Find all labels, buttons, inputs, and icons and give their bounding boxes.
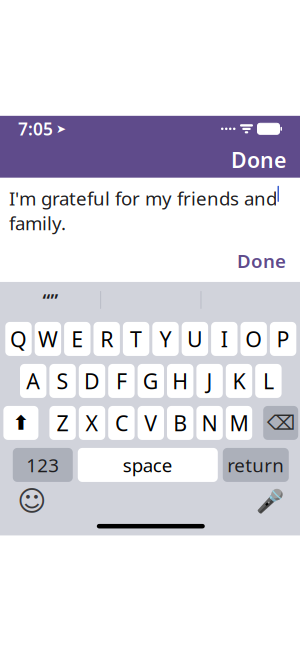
staticText: space <box>123 452 173 477</box>
button[interactable]: I <box>211 322 237 356</box>
staticText: Y <box>159 325 171 353</box>
button[interactable]: Z <box>49 406 76 440</box>
staticText: C <box>115 409 128 437</box>
staticText: “” <box>42 287 58 312</box>
button[interactable]: 123 <box>13 448 73 482</box>
button[interactable]: P <box>270 322 296 356</box>
staticText: R <box>100 325 113 353</box>
staticText: W <box>38 325 58 353</box>
button[interactable]: Dictate <box>253 486 287 516</box>
button[interactable]: Shift <box>3 406 38 440</box>
button[interactable]: W <box>35 322 61 356</box>
button[interactable]: V <box>138 406 164 440</box>
button[interactable]: space <box>78 448 218 482</box>
button[interactable]: K <box>226 364 252 398</box>
button[interactable]: Done <box>217 140 300 180</box>
staticText: P <box>277 325 290 353</box>
staticText: L <box>263 367 274 395</box>
staticText: D <box>84 367 100 395</box>
button[interactable]: F <box>108 364 135 398</box>
button[interactable]: C <box>108 406 135 440</box>
staticText: 123 <box>26 452 59 477</box>
button[interactable]: Delete <box>263 406 298 440</box>
staticText: G <box>143 367 159 395</box>
button[interactable]: G <box>138 364 164 398</box>
staticText: Done <box>237 248 286 273</box>
button[interactable]: L <box>255 364 282 398</box>
button[interactable]: B <box>167 406 193 440</box>
button[interactable]: D <box>79 364 105 398</box>
staticText: ➤ <box>56 122 66 136</box>
staticText: T <box>130 325 142 353</box>
button[interactable]: J <box>196 364 223 398</box>
staticText: E <box>71 325 83 353</box>
staticText: N <box>202 409 218 437</box>
button[interactable]: N <box>196 406 223 440</box>
button[interactable]: T <box>123 322 149 356</box>
staticText: U <box>187 325 203 353</box>
button[interactable]: A <box>20 364 46 398</box>
staticText: Q <box>10 325 27 353</box>
staticText: 7:05 <box>18 117 53 140</box>
staticText: B <box>173 409 187 437</box>
staticText: return <box>227 452 284 477</box>
button[interactable]: E <box>64 322 90 356</box>
staticText: F <box>116 367 127 395</box>
staticText: X <box>85 409 98 437</box>
staticText: ☺ <box>17 485 46 517</box>
button[interactable]: Emoji <box>15 486 49 516</box>
staticText: S <box>57 367 69 395</box>
button[interactable]: X <box>79 406 105 440</box>
staticText: O <box>245 325 262 353</box>
button[interactable]: Y <box>152 322 179 356</box>
button[interactable]: return <box>223 448 289 482</box>
button[interactable]: O <box>240 322 267 356</box>
staticText: M <box>229 409 248 437</box>
staticText: J <box>207 367 213 395</box>
button[interactable]: “” <box>1 282 100 318</box>
staticText: A <box>26 367 40 395</box>
button[interactable]: Done <box>223 243 300 278</box>
staticText: ⌫ <box>267 412 295 434</box>
button[interactable]: Q <box>5 322 32 356</box>
button[interactable]: H <box>167 364 193 398</box>
button[interactable]: U <box>182 322 208 356</box>
button[interactable]: M <box>226 406 252 440</box>
staticText: ⬆ <box>12 412 29 434</box>
staticText: I <box>221 325 228 353</box>
staticText: K <box>232 367 245 395</box>
staticText: V <box>144 409 157 437</box>
staticText: Z <box>57 409 69 437</box>
staticText: 🎤 <box>256 488 284 514</box>
staticText: H <box>172 367 188 395</box>
button[interactable]: R <box>93 322 120 356</box>
staticText: I'm grateful for my friends and family. <box>9 186 277 235</box>
button[interactable]: S <box>49 364 76 398</box>
staticText: Done <box>231 146 286 174</box>
